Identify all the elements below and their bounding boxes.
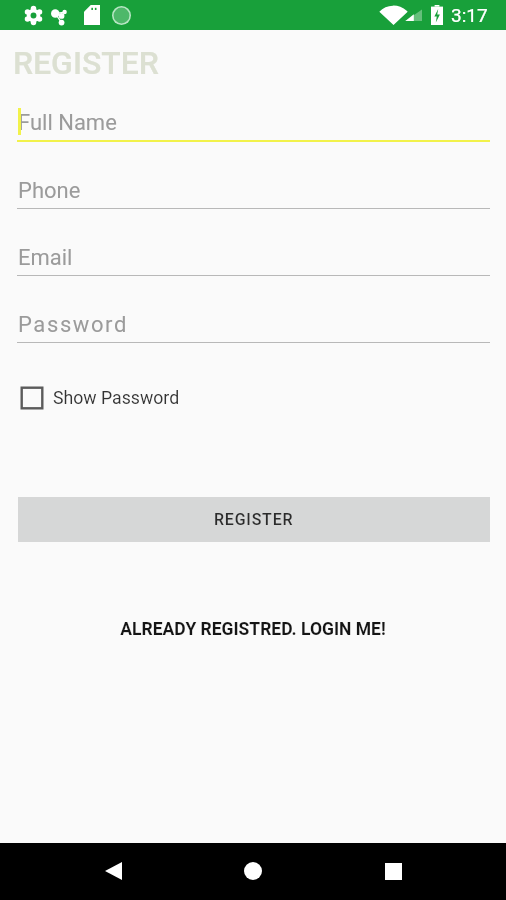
button[interactable]: ALREADY REGISTRED. LOGIN ME! [0, 615, 506, 643]
staticText: REGISTER [214, 510, 294, 529]
button[interactable]: Back [93, 851, 133, 891]
staticText: Full Name [18, 110, 117, 136]
staticText: Password [18, 312, 128, 338]
staticText: Phone [18, 178, 81, 204]
button[interactable]: REGISTER [18, 497, 490, 542]
button[interactable]: Show Password [20, 386, 180, 410]
staticText: ALREADY REGISTRED. LOGIN ME! [120, 619, 386, 640]
button[interactable]: Recent apps [373, 851, 413, 891]
staticText: Show Password [53, 388, 180, 409]
staticText: Email [18, 245, 73, 271]
button[interactable]: Home [233, 851, 273, 891]
staticText: REGISTER [13, 44, 159, 82]
staticText: 3:17 [451, 4, 488, 26]
